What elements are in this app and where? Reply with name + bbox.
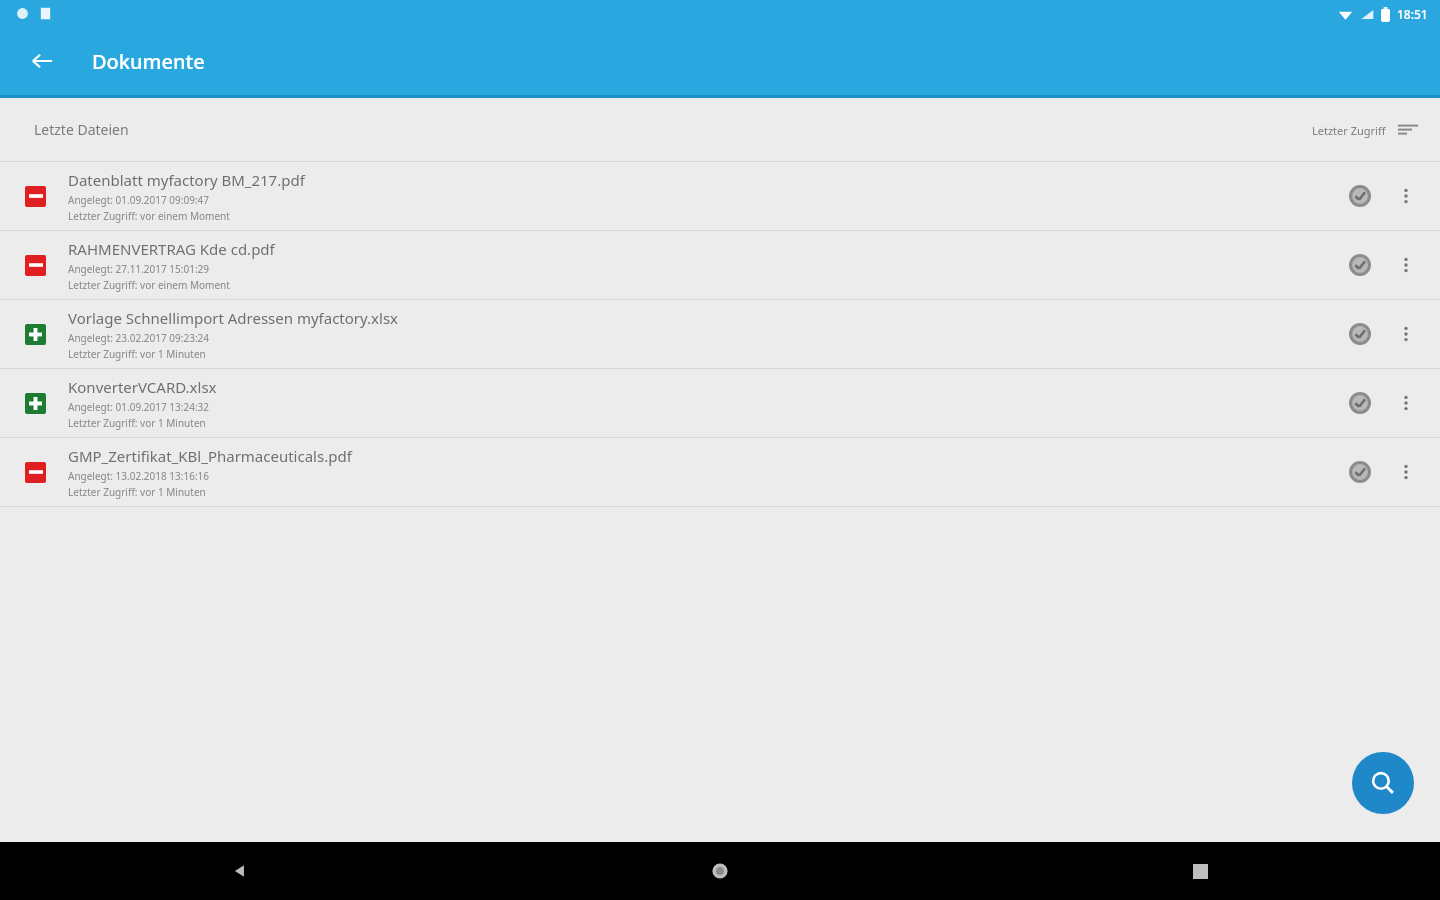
staticText: KonverterVCARD.xlsx (68, 377, 217, 397)
button[interactable]: KonverterVCARD.xlsx (0, 369, 1440, 437)
staticText: RAHMENVERTRAG Kde cd.pdf (68, 239, 275, 259)
staticText: Letzter Zugriff: vor 1 Minuten (68, 347, 206, 361)
button[interactable]: GMP_Zertifikat_KBl_Pharmaceuticals.pdf (0, 438, 1440, 506)
staticText: Vorlage Schnellimport Adressen myfactory… (68, 308, 399, 328)
staticText: 18:51 (1397, 6, 1428, 22)
staticText: Letzter Zugriff: vor einem Moment (68, 278, 230, 292)
button[interactable]: Übersicht (960, 842, 1440, 900)
button[interactable]: Weitere Optionen (1384, 381, 1428, 425)
staticText: Angelegt: 23.02.2017 09:23:24 (68, 331, 210, 345)
button[interactable]: Synchronisationsstatus (1338, 312, 1382, 356)
staticText: Angelegt: 27.11.2017 15:01:29 (68, 262, 210, 276)
staticText: Datenblatt myfactory BM_217.pdf (68, 170, 305, 190)
button[interactable]: Synchronisationsstatus (1338, 243, 1382, 287)
staticText: Letzter Zugriff: vor 1 Minuten (68, 485, 206, 499)
button[interactable]: Startbildschirm (480, 842, 960, 900)
staticText: Letzter Zugriff: vor 1 Minuten (68, 416, 206, 430)
button[interactable]: Synchronisationsstatus (1338, 174, 1382, 218)
button[interactable]: Datenblatt myfactory BM_217.pdf (0, 162, 1440, 230)
staticText: Angelegt: 13.02.2018 13:16:16 (68, 469, 210, 483)
button[interactable]: Weitere Optionen (1384, 312, 1428, 356)
button[interactable]: Zurück (0, 842, 480, 900)
button[interactable]: RAHMENVERTRAG Kde cd.pdf (0, 231, 1440, 299)
button[interactable]: Weitere Optionen (1384, 174, 1428, 218)
button[interactable]: Synchronisationsstatus (1338, 381, 1382, 425)
button[interactable]: Letzter Zugriff (1312, 120, 1418, 140)
button[interactable]: Weitere Optionen (1384, 243, 1428, 287)
button[interactable]: Suchen (1352, 752, 1414, 814)
staticText: Letzter Zugriff: vor einem Moment (68, 209, 230, 223)
staticText: GMP_Zertifikat_KBl_Pharmaceuticals.pdf (68, 446, 352, 466)
staticText: Letzter Zugriff (1312, 123, 1386, 138)
staticText: Angelegt: 01.09.2017 09:09:47 (68, 193, 210, 207)
staticText: Angelegt: 01.09.2017 13:24:32 (68, 400, 210, 414)
button[interactable]: Synchronisationsstatus (1338, 450, 1382, 494)
staticText: Letzte Dateien (34, 120, 129, 139)
button[interactable]: Zurück (20, 39, 64, 83)
button[interactable]: Vorlage Schnellimport Adressen myfactory… (0, 300, 1440, 368)
button[interactable]: Weitere Optionen (1384, 450, 1428, 494)
staticText: Dokumente (92, 48, 205, 75)
